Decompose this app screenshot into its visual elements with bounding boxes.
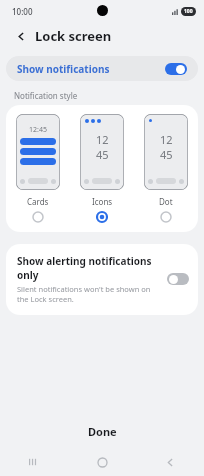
button[interactable]: Recents <box>0 448 68 476</box>
button[interactable]: Done <box>0 414 204 448</box>
button[interactable]: Show alerting notifications only <box>6 244 198 315</box>
staticText: 10:00 <box>12 6 33 17</box>
staticText: Silent notifications won't be shown on t… <box>17 284 161 304</box>
staticText: Show alerting notifications only <box>17 254 161 282</box>
button[interactable]: 12:45 <box>6 114 70 223</box>
staticText: Cards <box>27 196 49 207</box>
staticText: 12 <box>96 132 109 147</box>
staticText: Dot <box>159 196 173 207</box>
staticText: 12 <box>160 132 173 147</box>
staticText: Notification style <box>14 90 78 101</box>
staticText: 45 <box>96 147 109 162</box>
button[interactable]: 12 <box>134 114 198 223</box>
staticText: Icons <box>92 196 113 207</box>
staticText: Lock screen <box>35 27 112 45</box>
button[interactable]: Show notifications <box>6 56 198 81</box>
staticText: 45 <box>160 147 173 162</box>
button[interactable]: Back <box>11 26 31 46</box>
staticText: Show notifications <box>17 62 165 76</box>
button[interactable]: Home <box>68 448 136 476</box>
staticText: Done <box>88 424 117 439</box>
button[interactable]: Back <box>136 448 204 476</box>
staticText: 12:45 <box>29 125 47 135</box>
staticText: 100 <box>184 8 193 15</box>
button[interactable]: 12 <box>70 114 134 223</box>
